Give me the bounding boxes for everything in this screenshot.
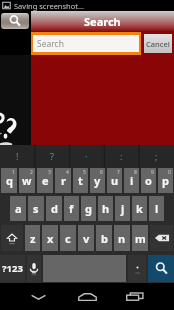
staticText: 7 <box>117 169 120 176</box>
button[interactable]: c <box>60 225 76 251</box>
staticText: c <box>65 231 71 246</box>
staticText: f <box>69 201 74 216</box>
staticText: r <box>61 173 66 188</box>
staticText: s <box>33 201 39 216</box>
button[interactable]: Backspace <box>150 225 173 251</box>
button[interactable]: l <box>149 196 164 221</box>
staticText: Search <box>84 14 121 29</box>
staticText: u <box>111 173 119 188</box>
staticText: d <box>51 201 58 216</box>
button[interactable]: z <box>25 225 40 251</box>
staticText: 2 <box>30 169 33 176</box>
staticText: : <box>120 150 123 162</box>
staticText: Cancel <box>146 39 170 49</box>
staticText: ! <box>16 150 19 162</box>
button[interactable]: h <box>98 196 113 221</box>
staticText: Saving screenshot… <box>14 1 84 11</box>
button[interactable]: Recents <box>115 283 155 310</box>
button[interactable]: v <box>78 225 94 251</box>
button[interactable]: b <box>96 225 112 251</box>
staticText: 5 <box>83 169 86 176</box>
staticText: 1 <box>12 169 15 176</box>
button[interactable]: r <box>55 168 71 193</box>
staticText: q <box>6 173 13 188</box>
staticText: k <box>136 201 143 216</box>
button[interactable]: Cancel <box>144 34 172 53</box>
staticText: · <box>85 150 88 162</box>
staticText: x <box>47 231 54 246</box>
button[interactable]: n <box>114 225 130 251</box>
button[interactable]: Hide keyboard <box>18 283 58 310</box>
staticText: o <box>145 173 152 188</box>
button[interactable]: w <box>19 168 35 193</box>
button[interactable]: · <box>69 145 104 168</box>
button[interactable]: Search <box>148 255 174 282</box>
staticText: y <box>94 173 101 188</box>
button[interactable]: Voice input <box>27 255 41 282</box>
button[interactable]: Search <box>1 13 29 29</box>
staticText: p <box>162 173 169 188</box>
staticText: 8 <box>134 169 137 176</box>
button[interactable]: : <box>104 145 139 168</box>
button[interactable]: ? <box>34 145 69 168</box>
button[interactable]: k <box>132 196 147 221</box>
staticText: j <box>121 201 125 216</box>
staticText: 6 <box>100 169 103 176</box>
staticText: e <box>42 173 49 188</box>
staticText: n <box>118 231 126 246</box>
button[interactable]: e <box>37 168 53 193</box>
staticText: m <box>135 231 146 246</box>
button[interactable]: x <box>42 225 58 251</box>
staticText: 9 <box>151 169 154 176</box>
staticText: v <box>83 231 90 246</box>
button[interactable]: ! <box>0 145 34 168</box>
button[interactable]: g <box>81 196 96 221</box>
staticText: w <box>22 173 32 188</box>
staticText: ? <box>50 150 54 162</box>
button[interactable]: i <box>124 168 139 193</box>
staticText: i <box>130 173 134 188</box>
button[interactable] <box>128 255 146 282</box>
button[interactable]: d <box>46 196 62 221</box>
staticText: g <box>85 201 92 216</box>
staticText: h <box>102 201 110 216</box>
button[interactable]: t <box>73 168 88 193</box>
button[interactable]: Home <box>67 283 107 310</box>
button[interactable]: m <box>132 225 148 251</box>
staticText: z <box>30 231 36 246</box>
button[interactable]: y <box>90 168 105 193</box>
button[interactable]: Search <box>33 35 139 52</box>
button[interactable]: ?123 <box>0 255 25 282</box>
staticText: Search <box>37 38 64 50</box>
button[interactable]: ; <box>139 145 174 168</box>
button[interactable]: f <box>64 196 79 221</box>
button[interactable]: u <box>107 168 122 193</box>
staticText: a <box>15 201 22 216</box>
staticText: 3 <box>48 169 51 176</box>
button[interactable]: p <box>158 168 173 193</box>
button[interactable]: a <box>10 196 26 221</box>
staticText: 4 <box>66 169 69 176</box>
staticText: t <box>78 173 83 188</box>
staticText: ; <box>155 150 158 162</box>
staticText: l <box>155 201 159 216</box>
button[interactable]: s <box>28 196 44 221</box>
staticText: ?123 <box>2 262 23 275</box>
staticText: b <box>101 231 108 246</box>
button[interactable]: q <box>1 168 17 193</box>
button[interactable]: j <box>115 196 130 221</box>
staticText: 0 <box>168 169 171 176</box>
button[interactable]: o <box>141 168 156 193</box>
button[interactable]: Shift <box>1 225 23 251</box>
